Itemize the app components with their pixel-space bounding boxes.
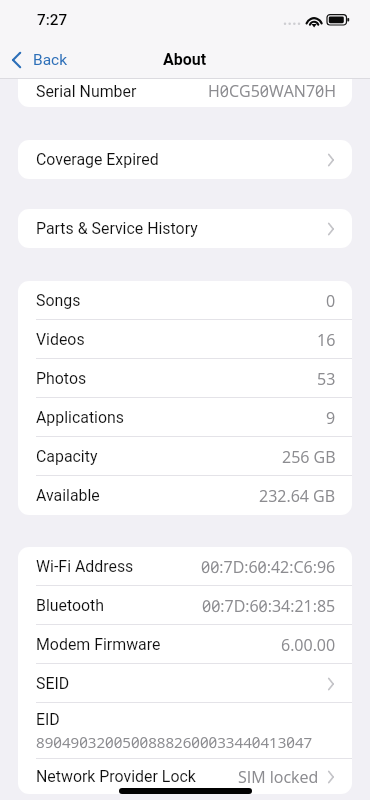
staticText: Songs: [36, 291, 81, 310]
staticText: H0CG50WAN70H: [208, 80, 336, 102]
staticText: 0: [326, 290, 336, 312]
button[interactable]: Available: [18, 476, 352, 515]
staticText: 00:7D:60:42:C6:96: [201, 556, 336, 578]
staticText: Coverage Expired: [36, 150, 159, 169]
button[interactable]: Network Provider Lock: [18, 759, 352, 794]
staticText: 89049032005008882600033440413047: [36, 732, 313, 753]
button[interactable]: Wi-Fi Address: [18, 547, 352, 586]
staticText: Bluetooth: [36, 596, 105, 615]
staticText: Serial Number: [36, 82, 137, 101]
staticText: 232.64 GB: [259, 485, 336, 507]
staticText: Photos: [36, 369, 87, 388]
staticText: SEID: [36, 674, 70, 693]
staticText: Modem Firmware: [36, 635, 161, 654]
staticText: Parts & Service History: [36, 219, 198, 238]
staticText: 00:7D:60:34:21:85: [202, 595, 336, 617]
button[interactable]: Parts & Service History: [18, 209, 352, 248]
button[interactable]: Modem Firmware: [18, 625, 352, 664]
button[interactable]: Serial Number: [18, 79, 352, 107]
staticText: 9: [326, 407, 336, 429]
button[interactable]: Bluetooth: [18, 586, 352, 625]
staticText: Back: [33, 51, 68, 69]
staticText: Network Provider Lock: [36, 767, 196, 786]
button[interactable]: Songs: [18, 281, 352, 320]
staticText: 7:27: [37, 11, 68, 29]
staticText: Videos: [36, 330, 85, 349]
button[interactable]: Back: [0, 47, 76, 73]
staticText: 53: [317, 368, 336, 390]
staticText: EID: [36, 710, 60, 729]
staticText: Applications: [36, 408, 125, 427]
button[interactable]: Capacity: [18, 437, 352, 476]
button[interactable]: Coverage Expired: [18, 140, 352, 179]
staticText: Wi-Fi Address: [36, 557, 134, 576]
staticText: SIM locked: [238, 766, 319, 788]
staticText: About: [163, 50, 207, 69]
button[interactable]: Photos: [18, 359, 352, 398]
staticText: Capacity: [36, 447, 98, 466]
button[interactable]: Videos: [18, 320, 352, 359]
button[interactable]: Applications: [18, 398, 352, 437]
button[interactable]: EID: [18, 703, 352, 759]
staticText: 6.00.00: [281, 634, 336, 656]
staticText: 256 GB: [282, 446, 336, 468]
staticText: Available: [36, 486, 100, 505]
staticText: 16: [317, 329, 336, 351]
button[interactable]: SEID: [18, 664, 352, 703]
